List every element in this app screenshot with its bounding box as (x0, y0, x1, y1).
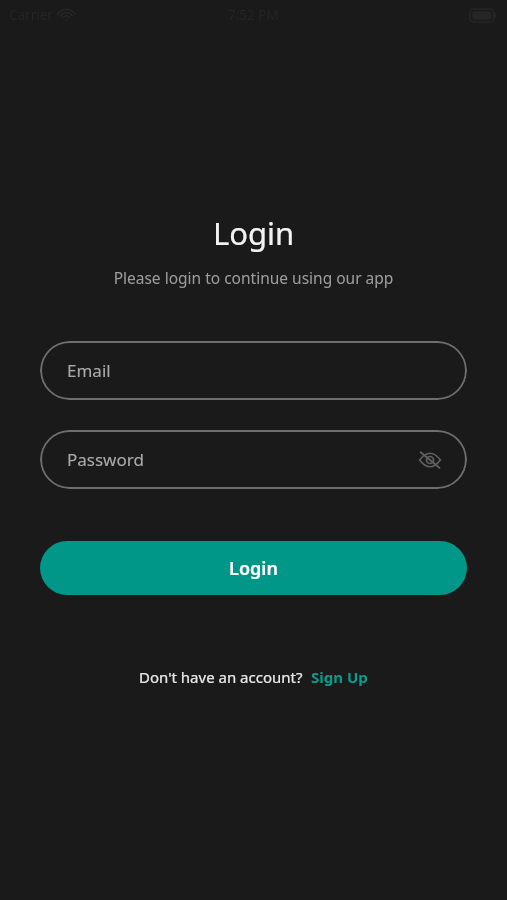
staticText: Login (229, 556, 278, 581)
button[interactable]: Login (40, 541, 467, 595)
button[interactable]: Sign Up (311, 667, 368, 687)
staticText: Sign Up (311, 667, 368, 687)
staticText: Email (67, 359, 111, 382)
staticText: Password (67, 448, 144, 471)
button[interactable]: Password (40, 430, 467, 489)
button[interactable]: Email (40, 341, 467, 400)
staticText: Please login to continue using our app (0, 267, 507, 288)
button[interactable]: Toggle password visibility (411, 441, 449, 479)
staticText: Login (0, 212, 507, 254)
staticText: 7:52 PM (228, 6, 279, 24)
staticText: Don't have an account? (139, 667, 303, 687)
